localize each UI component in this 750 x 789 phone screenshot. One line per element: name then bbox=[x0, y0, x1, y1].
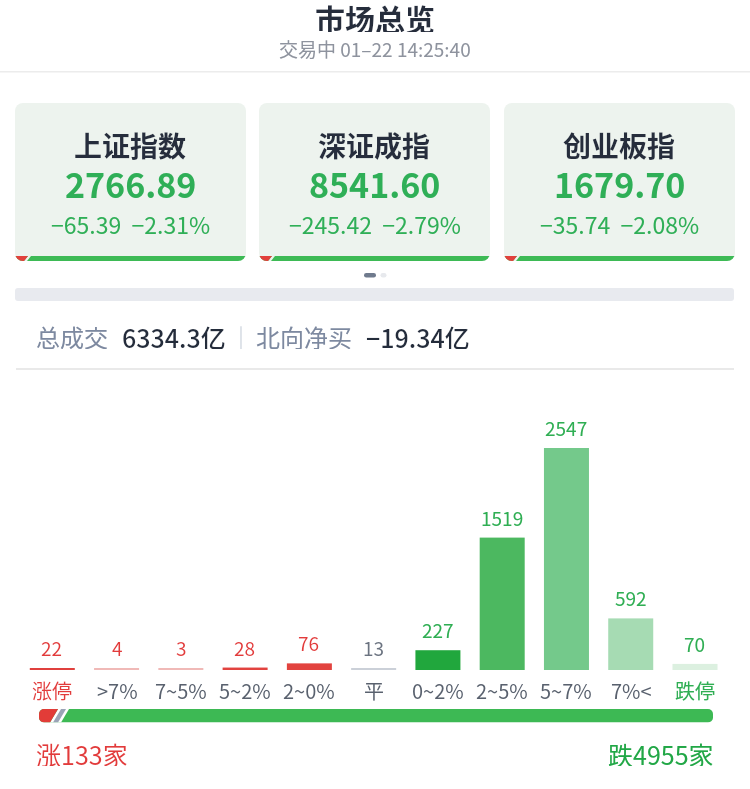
button[interactable]: 创业板指 bbox=[504, 103, 735, 261]
staticText: 总成交 bbox=[36, 319, 108, 349]
staticText: 4 bbox=[112, 634, 123, 660]
staticText: 市场总览 bbox=[315, 0, 435, 32]
staticText: 7%< bbox=[611, 676, 652, 702]
staticText: 3 bbox=[176, 634, 187, 660]
button[interactable]: 深证成指 bbox=[259, 103, 490, 261]
staticText: 2~5% bbox=[476, 676, 528, 702]
staticText: 1679.70 bbox=[554, 159, 686, 205]
staticText: −35.74 −2.08% bbox=[540, 207, 700, 237]
staticText: 28 bbox=[234, 634, 256, 660]
staticText: 70 bbox=[684, 630, 706, 656]
staticText: 涨133家 bbox=[36, 736, 128, 766]
staticText: 76 bbox=[298, 629, 320, 655]
staticText: −65.39 −2.31% bbox=[51, 207, 211, 237]
staticText: 1519 bbox=[481, 504, 524, 530]
staticText: 6334.3亿 bbox=[122, 319, 226, 349]
staticText: 上证指数 bbox=[74, 125, 187, 161]
staticText: >7% bbox=[97, 676, 138, 702]
staticText: 2~0% bbox=[283, 676, 335, 702]
staticText: 7~5% bbox=[155, 676, 207, 702]
button[interactable]: 上证指数 bbox=[15, 103, 246, 261]
staticText: 22 bbox=[41, 634, 63, 660]
staticText: 2766.89 bbox=[65, 159, 197, 205]
staticText: 227 bbox=[422, 616, 454, 642]
staticText: −19.34亿 bbox=[366, 319, 470, 349]
staticText: 5~2% bbox=[219, 676, 271, 702]
staticText: 0~2% bbox=[412, 676, 464, 702]
staticText: 5~7% bbox=[540, 676, 592, 702]
staticText: 跌4955家 bbox=[608, 736, 714, 766]
staticText: 592 bbox=[615, 584, 647, 610]
staticText: 涨停 bbox=[32, 676, 72, 702]
staticText: 北向净买 bbox=[256, 319, 352, 349]
staticText: 跌停 bbox=[675, 676, 715, 702]
staticText: 交易中 01–22 14:25:40 bbox=[279, 35, 471, 59]
staticText: | bbox=[238, 319, 244, 349]
staticText: 创业板指 bbox=[563, 125, 676, 161]
staticText: 8541.60 bbox=[309, 159, 441, 205]
button[interactable]: 总成交 bbox=[36, 319, 470, 349]
staticText: −245.42 −2.79% bbox=[289, 207, 461, 237]
staticText: 2547 bbox=[545, 414, 588, 440]
staticText: 平 bbox=[364, 676, 384, 702]
staticText: 13 bbox=[363, 634, 385, 660]
staticText: 深证成指 bbox=[318, 125, 431, 161]
